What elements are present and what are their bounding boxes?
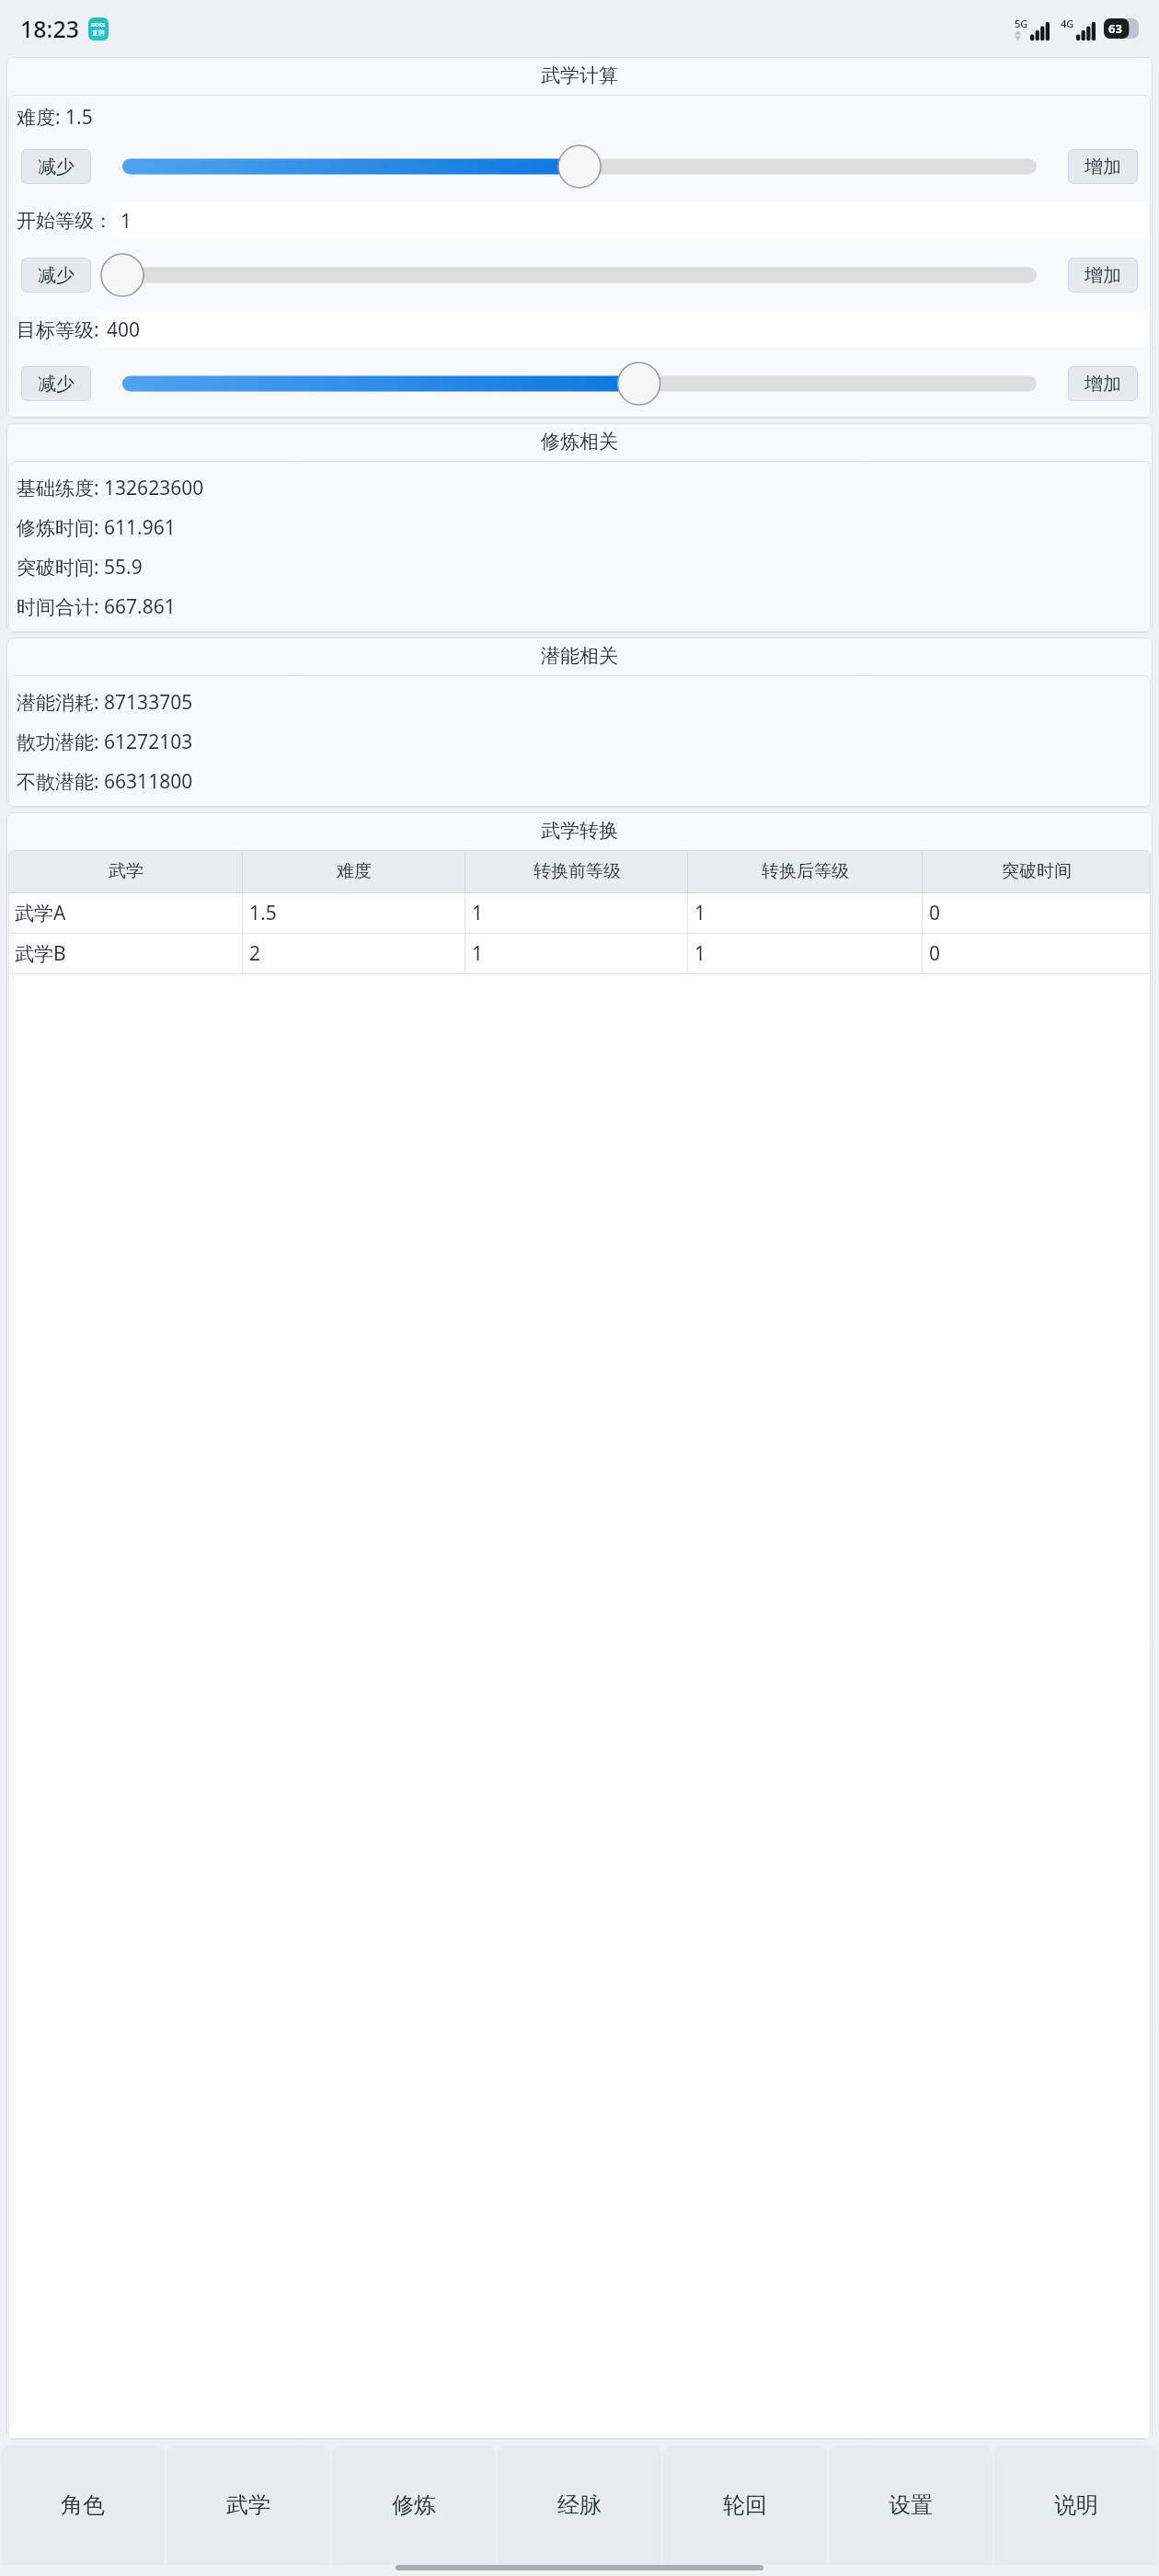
button[interactable]: 突破时间	[923, 850, 1151, 892]
button[interactable]: 设置	[829, 2445, 993, 2565]
button[interactable]: 轮回	[663, 2445, 827, 2565]
button[interactable]	[102, 252, 1057, 298]
staticText: 1.5	[249, 900, 277, 926]
staticText: 武学B	[15, 940, 66, 967]
staticText: 武学计算	[541, 63, 618, 87]
staticText: 1	[694, 940, 706, 967]
staticText: BOSS	[91, 21, 106, 29]
button[interactable]: 转换前等级	[465, 850, 688, 892]
staticText: 基础练度: 132623600	[17, 475, 204, 501]
staticText: 减少	[38, 264, 75, 287]
staticText: 武学转换	[541, 819, 618, 843]
staticText: 18:23	[20, 13, 80, 44]
staticText: 2	[249, 940, 261, 967]
staticText: 直聘	[92, 29, 105, 37]
staticText: 0	[929, 900, 941, 926]
staticText: 增加	[1084, 264, 1121, 287]
button[interactable]: 经脉	[498, 2445, 661, 2565]
button[interactable]: 减少	[21, 149, 91, 184]
staticText: 修炼相关	[541, 430, 618, 454]
staticText: 修炼时间: 611.961	[17, 514, 176, 541]
staticText: 角色	[61, 2491, 105, 2519]
button[interactable]: 减少	[21, 258, 91, 293]
staticText: 目标等级:	[17, 316, 99, 343]
staticText: 开始等级：	[17, 209, 113, 233]
staticText: 潜能相关	[541, 644, 618, 668]
staticText: 武学A	[15, 900, 66, 926]
staticText: 难度: 1.5	[17, 104, 93, 131]
staticText: 1	[694, 900, 706, 926]
staticText: 轮回	[723, 2491, 767, 2519]
button[interactable]: 400	[99, 311, 1151, 348]
staticText: 4G	[1061, 17, 1074, 30]
button[interactable]: 武学	[166, 2445, 330, 2565]
staticText: 修炼	[392, 2491, 436, 2519]
staticText: 减少	[38, 155, 75, 178]
button[interactable]: 角色	[1, 2445, 165, 2565]
staticText: 武学	[226, 2491, 270, 2519]
staticText: 转换后等级	[762, 860, 849, 882]
button[interactable]: 1	[113, 202, 1151, 239]
button[interactable]: 武学A	[8, 893, 1151, 933]
button[interactable]: 武学B	[8, 934, 1151, 973]
staticText: 减少	[38, 373, 75, 396]
button[interactable]: 转换后等级	[688, 850, 923, 892]
staticText: 1	[472, 940, 484, 967]
staticText: 63	[1108, 20, 1122, 37]
staticText: 1	[472, 900, 484, 926]
staticText: 经脉	[557, 2491, 602, 2519]
staticText: 不散潜能: 66311800	[17, 768, 193, 795]
staticText: 5G	[1015, 17, 1028, 30]
button[interactable]: 武学	[8, 850, 243, 892]
button[interactable]: 增加	[1068, 258, 1138, 293]
staticText: 武学	[109, 860, 143, 882]
button[interactable]	[102, 361, 1057, 407]
staticText: 设置	[889, 2491, 933, 2519]
staticText: 1	[120, 208, 132, 235]
staticText: 突破时间	[1002, 860, 1072, 882]
button[interactable]	[102, 144, 1057, 190]
staticText: 时间合计: 667.861	[17, 593, 176, 620]
staticText: 增加	[1084, 155, 1121, 178]
staticText: 转换前等级	[534, 860, 621, 882]
staticText: 突破时间: 55.9	[17, 554, 143, 581]
button[interactable]: 增加	[1068, 366, 1138, 401]
staticText: 难度	[337, 860, 372, 882]
button[interactable]: 说明	[994, 2445, 1158, 2565]
staticText: 400	[107, 316, 141, 343]
button[interactable]: 增加	[1068, 149, 1138, 184]
staticText: 说明	[1054, 2491, 1098, 2519]
staticText: 增加	[1084, 373, 1121, 396]
staticText: 散功潜能: 61272103	[17, 729, 193, 755]
button[interactable]: 难度	[243, 850, 465, 892]
button[interactable]: 修炼	[332, 2445, 496, 2565]
button[interactable]: 减少	[21, 366, 91, 401]
staticText: 0	[929, 940, 941, 967]
staticText: 潜能消耗: 87133705	[17, 689, 193, 716]
